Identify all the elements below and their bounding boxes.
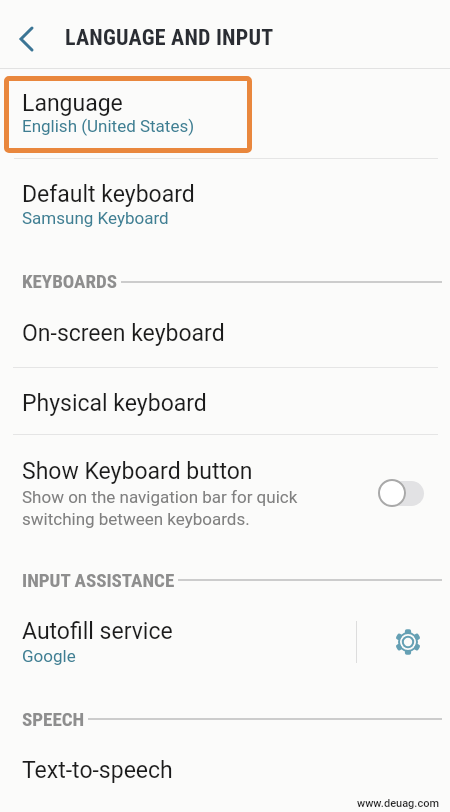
- button[interactable]: [16, 24, 40, 54]
- button[interactable]: [394, 628, 422, 656]
- staticText: Language: [22, 90, 123, 117]
- button[interactable]: [0, 438, 450, 538]
- button[interactable]: [0, 740, 450, 800]
- staticText: Physical keyboard: [22, 390, 207, 417]
- staticText: switching between keyboards.: [22, 509, 250, 529]
- staticText: www.deuag.com: [357, 797, 440, 810]
- button[interactable]: [0, 605, 355, 680]
- staticText: KEYBOARDS: [22, 270, 117, 292]
- staticText: Samsung Keyboard: [22, 208, 169, 228]
- button[interactable]: [0, 0, 450, 68]
- staticText: INPUT ASSISTANCE: [22, 569, 175, 591]
- staticText: Autofill service: [22, 618, 173, 645]
- staticText: Default keyboard: [22, 181, 195, 208]
- button[interactable]: [378, 479, 406, 507]
- staticText: LANGUAGE AND INPUT: [65, 25, 274, 51]
- button[interactable]: [0, 165, 450, 245]
- button[interactable]: [0, 369, 450, 437]
- staticText: Show on the navigation bar for quick: [22, 487, 298, 507]
- button[interactable]: [4, 76, 252, 153]
- staticText: On-screen keyboard: [22, 320, 225, 347]
- staticText: SPEECH: [22, 708, 85, 730]
- staticText: Google: [22, 646, 76, 666]
- staticText: Text-to-speech: [22, 757, 173, 784]
- button[interactable]: [0, 305, 450, 367]
- staticText: English (United States): [22, 116, 195, 136]
- staticText: Show Keyboard button: [22, 458, 253, 485]
